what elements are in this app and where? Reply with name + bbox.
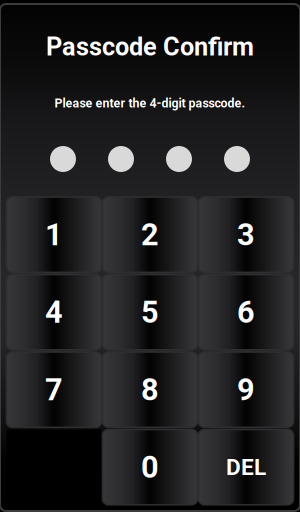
button[interactable]: 1: [6, 197, 101, 272]
button[interactable]: 7: [6, 352, 101, 427]
staticText: 0: [141, 449, 159, 485]
staticText: 7: [45, 372, 63, 408]
staticText: 6: [237, 294, 255, 330]
button[interactable]: DEL: [198, 429, 293, 505]
staticText: 4: [45, 294, 63, 330]
button[interactable]: 8: [102, 352, 197, 427]
staticText: Please enter the 4-digit passcode.: [54, 96, 245, 110]
staticText: 5: [141, 294, 159, 330]
button[interactable]: 2: [102, 197, 197, 272]
staticText: 3: [237, 217, 255, 253]
button[interactable]: 4: [6, 274, 101, 350]
staticText: 8: [141, 372, 159, 408]
button[interactable]: 6: [198, 274, 293, 350]
staticText: DEL: [226, 454, 266, 480]
staticText: 1: [45, 217, 63, 253]
button[interactable]: 9: [198, 352, 293, 427]
button[interactable]: 3: [198, 197, 293, 272]
staticText: 9: [237, 372, 255, 408]
staticText: Passcode Confirm: [46, 32, 254, 62]
button[interactable]: 5: [102, 274, 197, 350]
staticText: 2: [141, 217, 159, 253]
button[interactable]: 0: [102, 429, 197, 505]
